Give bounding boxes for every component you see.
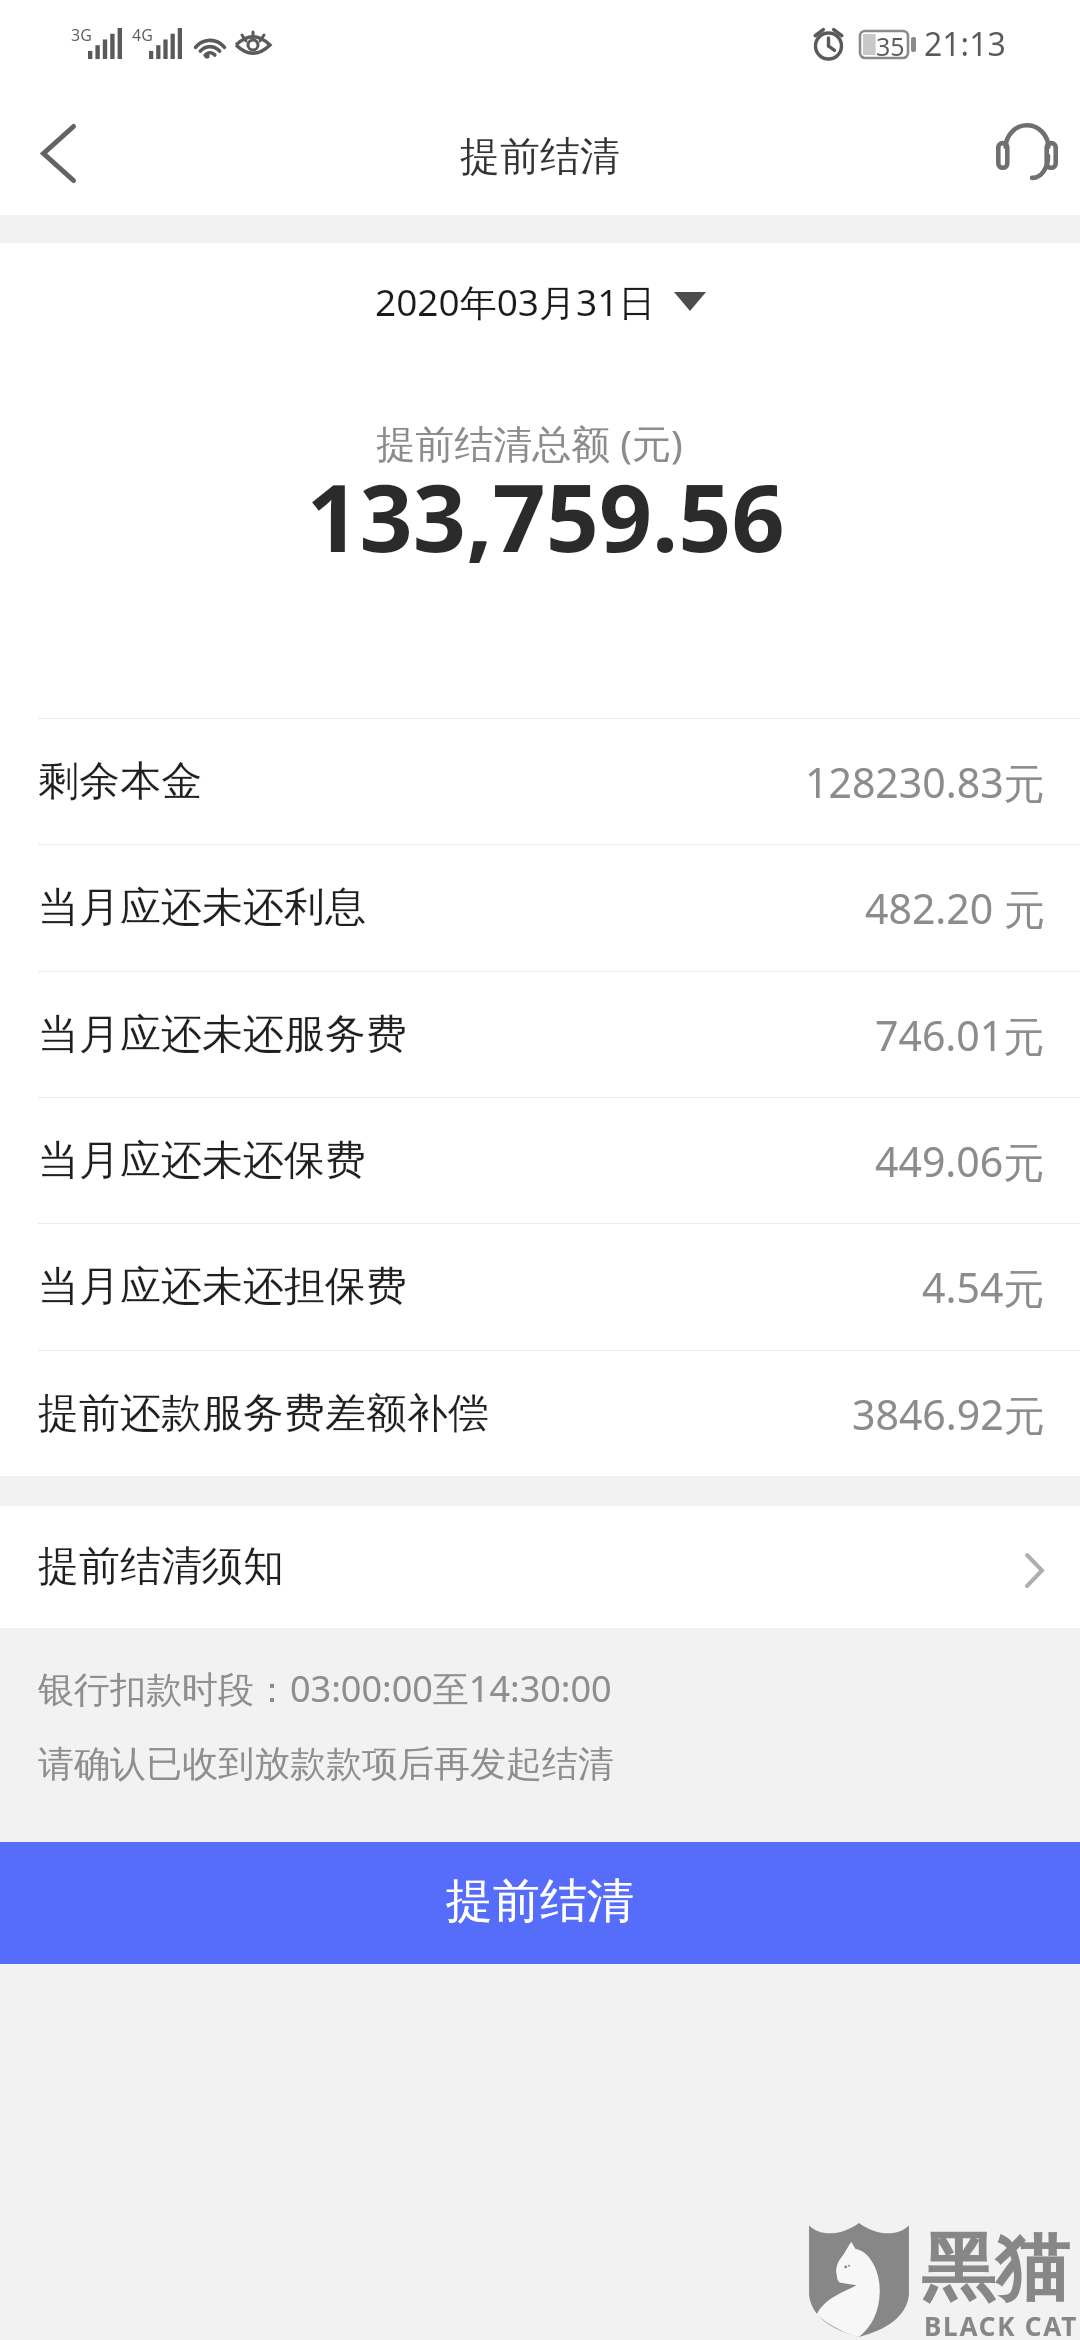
staticText: 482.20 元: [865, 880, 1045, 936]
staticText: 黑猫: [921, 2222, 1069, 2315]
button[interactable]: 当月应还未还担保费: [0, 1224, 1080, 1349]
staticText: 2020年03月31日: [375, 276, 656, 327]
staticText: 当月应还未还服务费: [38, 1009, 407, 1061]
staticText: 449.06元: [875, 1133, 1045, 1189]
staticText: 剩余本金: [38, 756, 202, 808]
staticText: 银行扣款时段：03:00:00至14:30:00: [38, 1664, 612, 1713]
staticText: 35: [876, 29, 905, 63]
staticText: 746.01元: [875, 1007, 1045, 1063]
button[interactable]: 当月应还未还利息: [0, 845, 1080, 970]
button[interactable]: 提前结清: [0, 1842, 1080, 1964]
button[interactable]: Customer service: [968, 96, 1080, 215]
staticText: 提前还款服务费差额补偿: [38, 1388, 489, 1440]
staticText: 3846.92元: [852, 1386, 1045, 1442]
staticText: 提前结清: [446, 1872, 634, 1931]
button[interactable]: 提前还款服务费差额补偿: [0, 1351, 1080, 1476]
staticText: 请确认已收到放款款项后再发起结清: [38, 1741, 614, 1786]
button[interactable]: 当月应还未还保费: [0, 1098, 1080, 1223]
staticText: 21:13: [924, 22, 1006, 66]
button[interactable]: 剩余本金: [0, 719, 1080, 844]
staticText: 128230.83元: [805, 754, 1045, 810]
button[interactable]: Back: [0, 96, 114, 215]
button[interactable]: 提前结清须知: [0, 1506, 1080, 1628]
button[interactable]: 当月应还未还服务费: [0, 972, 1080, 1097]
staticText: BLACK CAT: [924, 2308, 1079, 2340]
staticText: 4.54元: [922, 1259, 1045, 1315]
staticText: 当月应还未还保费: [38, 1135, 366, 1187]
staticText: 提前结清总额 (元): [376, 416, 683, 469]
staticText: 提前结清须知: [38, 1541, 284, 1593]
button[interactable]: 2020年03月31日: [365, 260, 716, 342]
staticText: 133,759.56: [306, 453, 785, 563]
staticText: 3G: [71, 24, 92, 46]
staticText: 4G: [132, 24, 153, 46]
staticText: 当月应还未还利息: [38, 882, 366, 934]
staticText: 提前结清: [460, 131, 620, 181]
staticText: 当月应还未还担保费: [38, 1261, 407, 1313]
